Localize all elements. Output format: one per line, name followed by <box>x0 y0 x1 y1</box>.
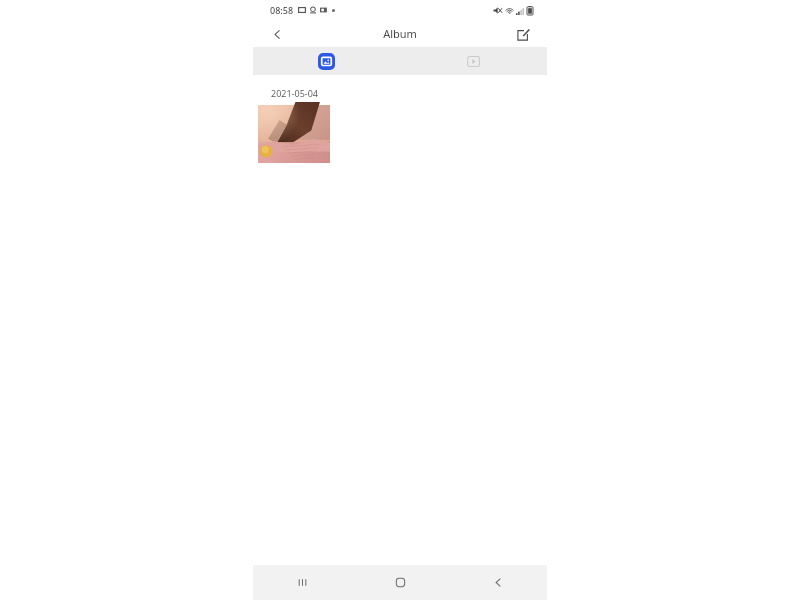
button[interactable]: Edit <box>512 23 534 45</box>
button[interactable]: Recent apps <box>253 565 351 600</box>
button[interactable]: Home <box>351 565 449 600</box>
staticText: Album <box>383 26 417 41</box>
button[interactable]: Back <box>266 23 288 45</box>
button[interactable]: Back <box>449 565 547 600</box>
button[interactable]: Photos tab <box>253 47 400 75</box>
button[interactable]: Videos tab <box>400 47 547 75</box>
staticText: 08:58 <box>270 4 294 16</box>
button[interactable]: Photo from 2021-05-04 <box>258 105 330 163</box>
staticText: 2021-05-04 <box>271 87 318 99</box>
